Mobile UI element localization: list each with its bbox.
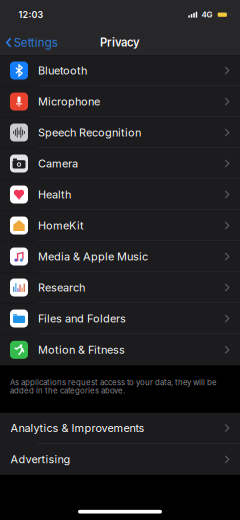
staticText: Speech Recognition [38, 126, 141, 139]
button[interactable]: Research [0, 272, 240, 303]
staticText: Motion & Fitness [38, 343, 125, 356]
button[interactable]: Advertising [0, 444, 240, 475]
staticText: Files and Folders [38, 312, 126, 325]
staticText: Advertising [10, 453, 70, 466]
staticText: Media & Apple Music [38, 250, 148, 263]
staticText: Analytics & Improvements [10, 421, 144, 435]
button[interactable]: Camera [0, 148, 240, 179]
staticText: Privacy [100, 36, 140, 49]
staticText: Bluetooth [38, 64, 87, 77]
button[interactable]: Speech Recognition [0, 117, 240, 148]
button[interactable]: HomeKit [0, 210, 240, 241]
button[interactable]: Files and Folders [0, 303, 240, 334]
staticText: Health [38, 188, 71, 201]
staticText: Settings [14, 36, 58, 49]
button[interactable]: Motion & Fitness [0, 334, 240, 365]
button[interactable]: Microphone [0, 86, 240, 117]
staticText: Microphone [38, 95, 100, 108]
staticText: As applications request access to your d… [10, 378, 217, 395]
button[interactable]: Analytics & Improvements [0, 413, 240, 444]
staticText: Camera [38, 157, 78, 170]
button[interactable]: Bluetooth [0, 55, 240, 86]
staticText: 12:03 [19, 9, 44, 20]
staticText: HomeKit [38, 219, 84, 232]
button[interactable]: Media & Apple Music [0, 241, 240, 272]
button[interactable]: Health [0, 179, 240, 210]
staticText: Research [38, 281, 85, 294]
button[interactable]: Settings [0, 26, 58, 58]
staticText: 4G [201, 10, 212, 20]
